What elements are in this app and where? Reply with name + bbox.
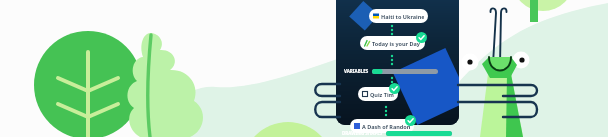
button[interactable]: Haiti to Ukraine (369, 9, 428, 23)
other: Completed (416, 32, 427, 43)
button[interactable]: A Dash of Random (350, 119, 414, 133)
staticText: VARIABLES (344, 68, 369, 74)
staticText: DRAWING SHAPES (342, 130, 383, 136)
staticText: Quiz Time (370, 91, 394, 98)
staticText: A Dash of Random (362, 123, 410, 130)
other: Completed (389, 83, 400, 94)
button[interactable]: Quiz Time (358, 87, 398, 101)
other: Completed (405, 115, 416, 126)
button[interactable]: Today is your Day (360, 36, 425, 50)
staticText: Haiti to Ukraine (381, 13, 424, 20)
staticText: Today is your Day (372, 40, 420, 47)
